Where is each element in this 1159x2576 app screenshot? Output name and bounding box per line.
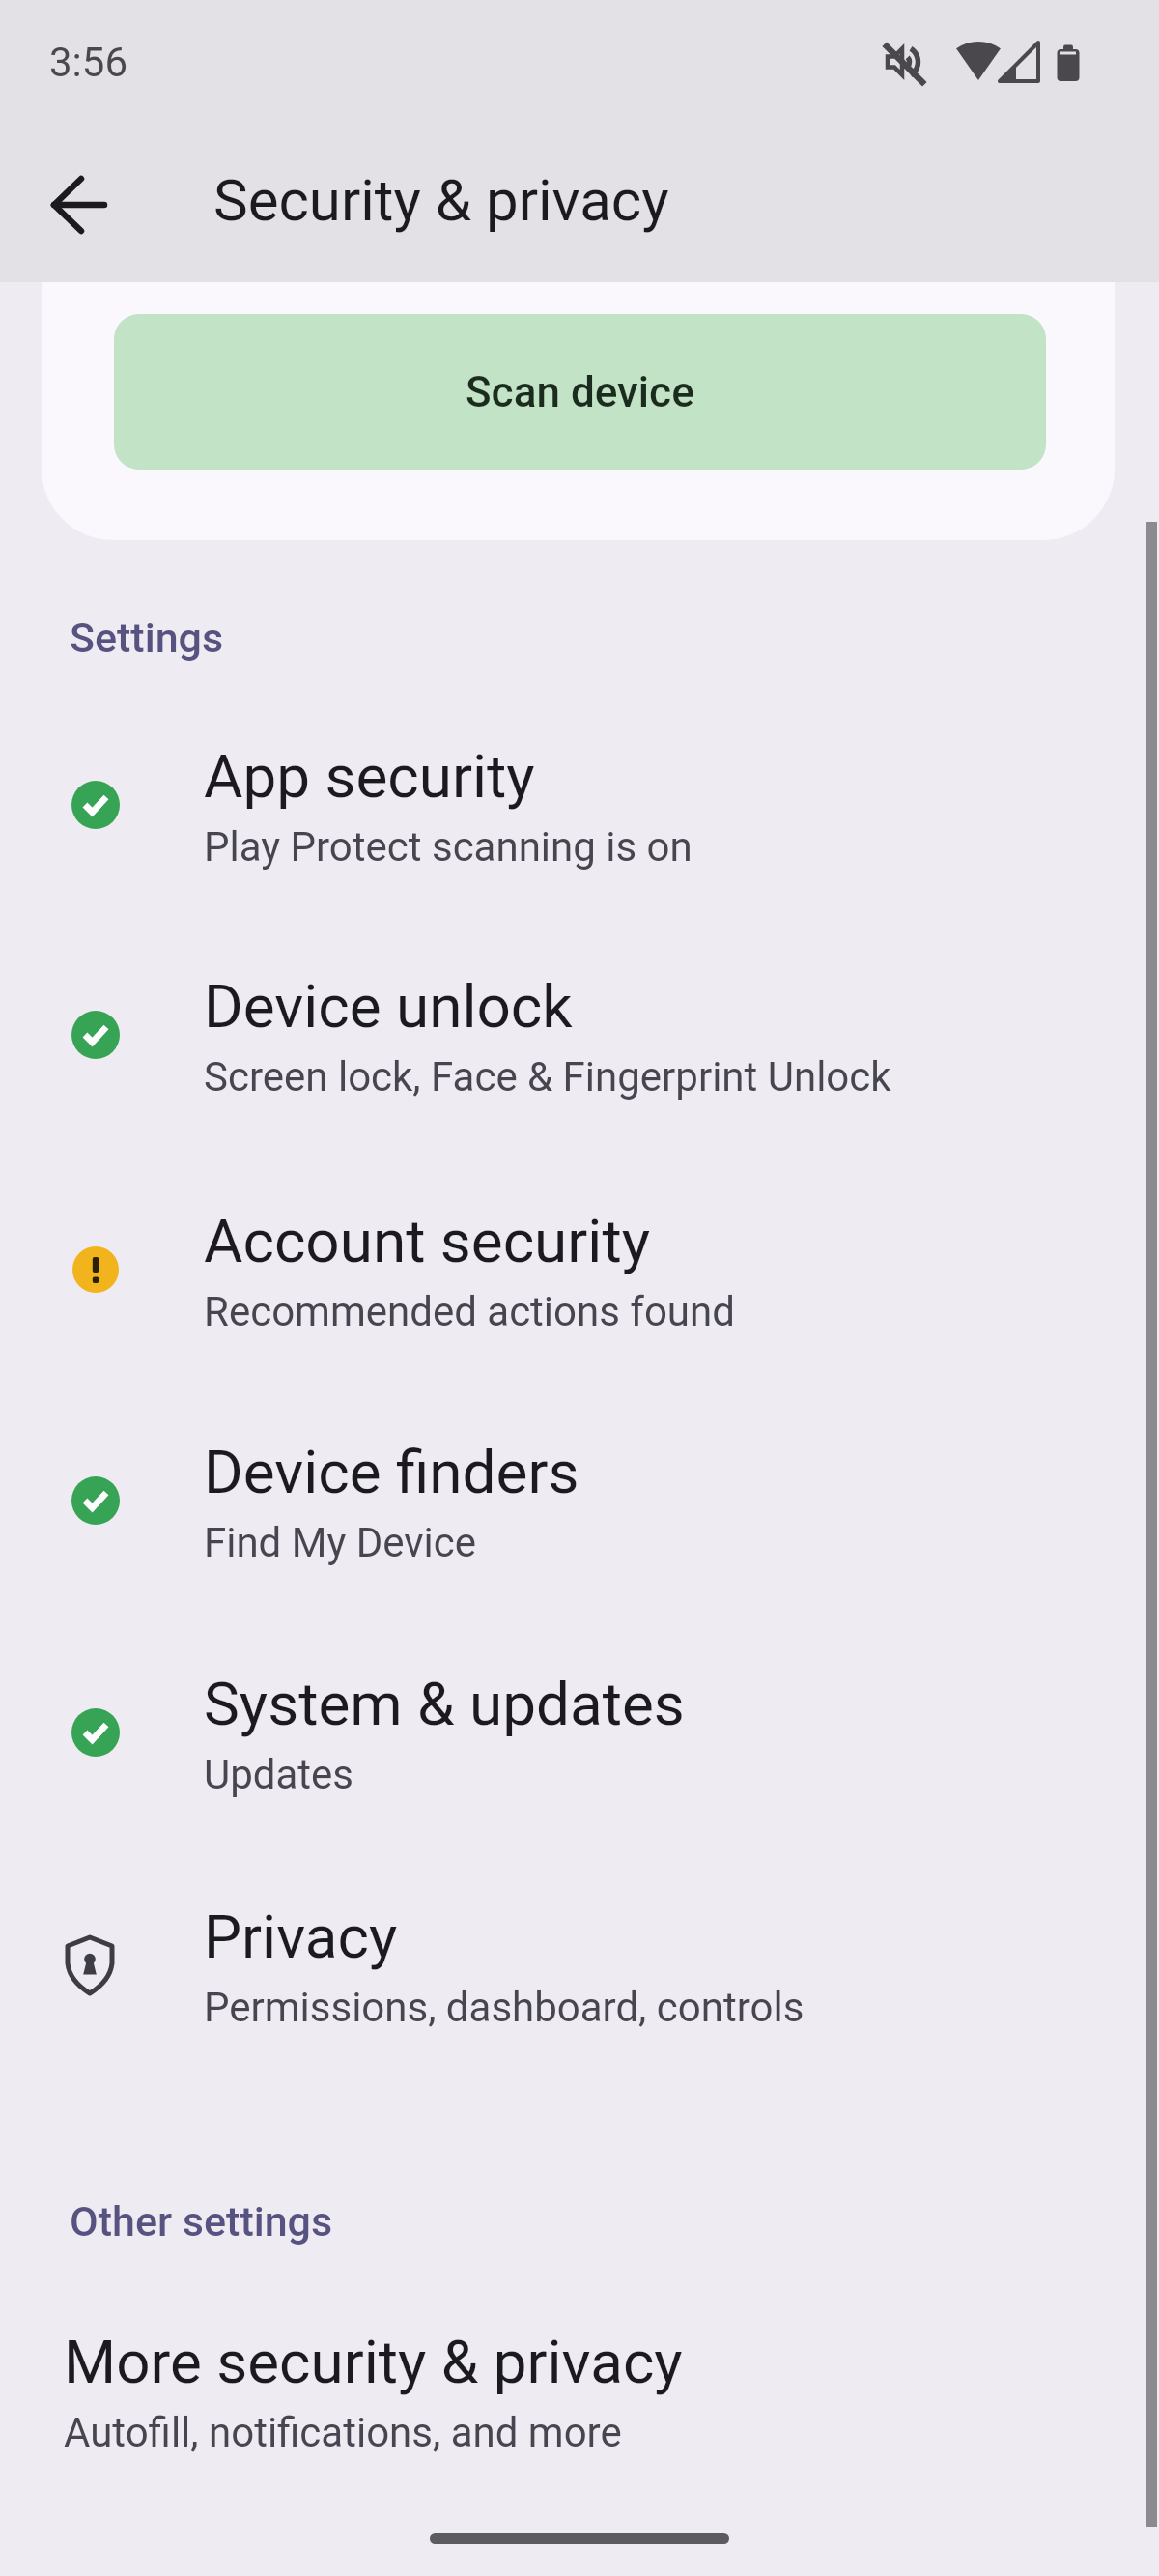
staticText: App security bbox=[204, 741, 535, 812]
button[interactable]: System & updates bbox=[0, 1617, 1159, 1847]
button[interactable]: Scan device bbox=[114, 314, 1046, 470]
button[interactable]: App security bbox=[0, 690, 1159, 920]
button[interactable]: Device unlock bbox=[0, 920, 1159, 1150]
button[interactable]: Device finders bbox=[0, 1386, 1159, 1616]
staticText: Screen lock, Face & Fingerprint Unlock bbox=[204, 1053, 891, 1101]
staticText: More security & privacy bbox=[64, 2327, 683, 2397]
staticText: 3:56 bbox=[49, 39, 127, 85]
staticText: Play Protect scanning is on bbox=[204, 823, 693, 871]
staticText: Security & privacy bbox=[213, 166, 669, 234]
staticText: Autofill, notifications, and more bbox=[64, 2409, 622, 2456]
staticText: Permissions, dashboard, controls bbox=[204, 1984, 805, 2031]
staticText: Scan device bbox=[466, 367, 694, 417]
staticText: System & updates bbox=[204, 1669, 685, 1739]
staticText: Device finders bbox=[204, 1437, 579, 1507]
button[interactable] bbox=[39, 164, 120, 245]
button[interactable]: More security & privacy bbox=[0, 2275, 1159, 2505]
staticText: Other settings bbox=[70, 2197, 333, 2246]
staticText: Updates bbox=[204, 1751, 354, 1798]
button[interactable]: Privacy bbox=[0, 1850, 1159, 2080]
staticText: Settings bbox=[70, 614, 224, 662]
staticText: Recommended actions found bbox=[204, 1288, 735, 1335]
staticText: Find My Device bbox=[204, 1519, 477, 1566]
staticText: Privacy bbox=[204, 1902, 398, 1972]
staticText: Device unlock bbox=[204, 971, 573, 1042]
button[interactable]: Account security bbox=[0, 1155, 1159, 1385]
staticText: Account security bbox=[204, 1206, 651, 1276]
